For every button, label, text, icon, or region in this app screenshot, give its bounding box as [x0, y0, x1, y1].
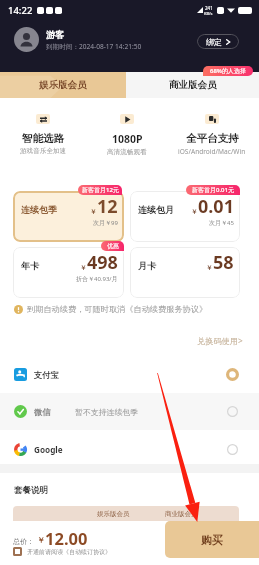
- staticText: 14:22: [8, 4, 33, 17]
- staticText: 商业版会员: [169, 79, 217, 91]
- button[interactable]: 兑换码使用>: [197, 335, 243, 346]
- staticText: 68%的人选择: [210, 67, 246, 75]
- staticText: 兑换码使用>: [197, 335, 243, 346]
- staticText: 连续包月: [138, 204, 174, 215]
- button[interactable]: 支付宝: [0, 356, 259, 393]
- staticText: 0.01: [198, 194, 234, 219]
- button[interactable]: 年卡: [13, 247, 124, 298]
- staticText: 高清流畅观看: [107, 148, 147, 156]
- staticText: Google: [34, 444, 63, 455]
- staticText: 商业版会员: [165, 510, 198, 518]
- staticText: 到期自动续费，可随时取消《自动续费服务协议》: [27, 304, 208, 314]
- staticText: 总价：: [13, 537, 34, 546]
- staticText: 月卡: [138, 260, 156, 271]
- staticText: ￥: [206, 264, 213, 272]
- staticText: 游戏音乐全加速: [20, 147, 67, 155]
- staticText: 新客首月12元: [82, 186, 119, 194]
- staticText: ￥: [191, 208, 198, 216]
- staticText: 智能选路: [22, 132, 64, 145]
- staticText: 全平台支持: [186, 132, 239, 145]
- staticText: 次月￥45: [209, 219, 234, 227]
- staticText: 12.00: [45, 527, 88, 549]
- button[interactable]: 开通前请阅读《自动续订协议》: [13, 547, 111, 556]
- button[interactable]: 连续包月: [130, 191, 240, 242]
- staticText: ￥: [37, 535, 45, 545]
- staticText: 年卡: [21, 260, 39, 271]
- staticText: 游客: [46, 29, 64, 40]
- staticText: iOS/Android/Mac/Win: [178, 147, 246, 156]
- button[interactable]: 微信: [0, 393, 259, 430]
- button[interactable]: 连续包季: [13, 191, 124, 242]
- button[interactable]: Google: [0, 431, 259, 468]
- button[interactable]: 娱乐版会员: [0, 72, 126, 98]
- button[interactable]: 月卡: [130, 247, 240, 298]
- staticText: 暂不支持连续包季: [75, 407, 139, 417]
- staticText: ￥: [80, 264, 87, 272]
- staticText: 娱乐版会员: [39, 79, 87, 91]
- staticText: 开通前请阅读《自动续订协议》: [27, 548, 111, 556]
- staticText: 12: [97, 194, 118, 219]
- button[interactable]: 绑定: [197, 34, 239, 49]
- staticText: 498: [87, 250, 118, 275]
- staticText: 娱乐版会员: [97, 510, 130, 518]
- button[interactable]: 购买: [165, 521, 259, 558]
- staticText: 到期时间：2024-08-17 14:21:50: [46, 42, 142, 51]
- staticText: 连续包季: [21, 204, 57, 215]
- staticText: 支付宝: [34, 370, 59, 380]
- staticText: 1080P: [112, 132, 143, 146]
- staticText: 新客首月0.01元: [192, 186, 234, 194]
- staticText: 绑定: [206, 37, 222, 47]
- staticText: 折合￥40.93/月: [76, 275, 118, 283]
- staticText: 241: [205, 5, 213, 11]
- button[interactable]: 商业版会员: [126, 72, 259, 98]
- staticText: 套餐说明: [14, 485, 48, 496]
- staticText: 优惠: [107, 242, 119, 250]
- staticText: ￥: [90, 208, 97, 216]
- staticText: 微信: [34, 407, 51, 417]
- staticText: 购买: [201, 533, 223, 547]
- staticText: 次月￥99: [93, 219, 118, 227]
- staticText: KB/s: [204, 11, 213, 16]
- staticText: 58: [213, 250, 234, 275]
